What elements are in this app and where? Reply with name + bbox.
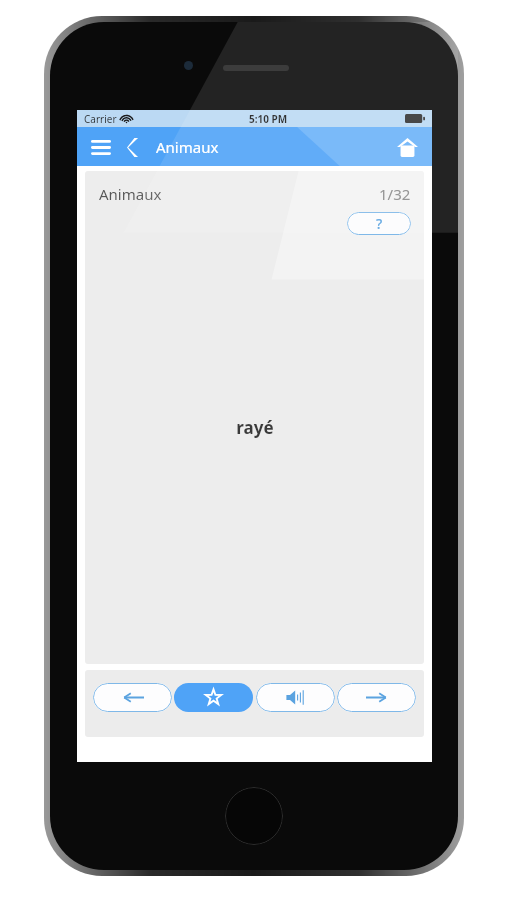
button[interactable]: Home [387,129,427,165]
staticText: ? [376,214,383,233]
staticText: 1/32 [379,184,411,204]
staticText: rayé [236,416,274,439]
button[interactable]: Menu [86,131,116,163]
staticText: Animaux [99,184,162,204]
button[interactable]: Play audio [256,683,335,712]
button[interactable]: Back [119,131,147,163]
staticText: 5:10 PM [249,112,288,126]
staticText: Carrier [84,112,117,126]
staticText: Animaux [156,137,219,157]
button[interactable]: Hint [347,212,411,235]
button[interactable]: Next [337,683,416,712]
button[interactable]: Previous [93,683,172,712]
button[interactable]: Favorite [174,683,253,712]
